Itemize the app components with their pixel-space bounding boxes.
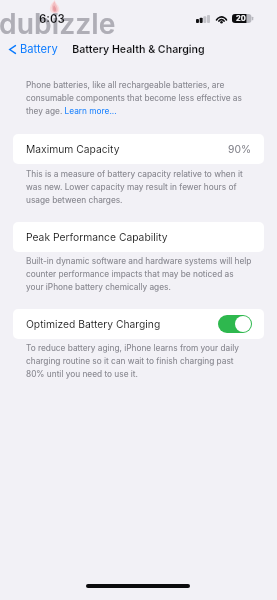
button[interactable]: Optimized Battery Charging toggle, on (218, 315, 252, 333)
staticText: Built-in dynamic software and hardware s… (26, 256, 252, 292)
staticText: 6:03 (39, 12, 65, 26)
button[interactable]: Battery (5, 40, 62, 58)
staticText: 20 (236, 14, 246, 23)
button[interactable]: Optimized Battery Charging (13, 309, 264, 339)
staticText: 90% (228, 143, 251, 155)
staticText: Battery (20, 42, 58, 56)
staticText: Peak Performance Capability (26, 231, 168, 243)
staticText: dubizzle (0, 7, 116, 41)
button[interactable]: Maximum Capacity (13, 134, 264, 164)
staticText: Optimized Battery Charging (26, 318, 161, 330)
staticText: Maximum Capacity (26, 143, 120, 155)
staticText: To reduce battery aging, iPhone learns f… (26, 343, 239, 379)
staticText: This is a measure of battery capacity re… (26, 169, 243, 205)
staticText: Battery Health & Charging (0, 43, 277, 56)
button[interactable]: Peak Performance Capability (13, 222, 264, 252)
staticText: Phone batteries, like all rechargeable b… (26, 80, 242, 116)
